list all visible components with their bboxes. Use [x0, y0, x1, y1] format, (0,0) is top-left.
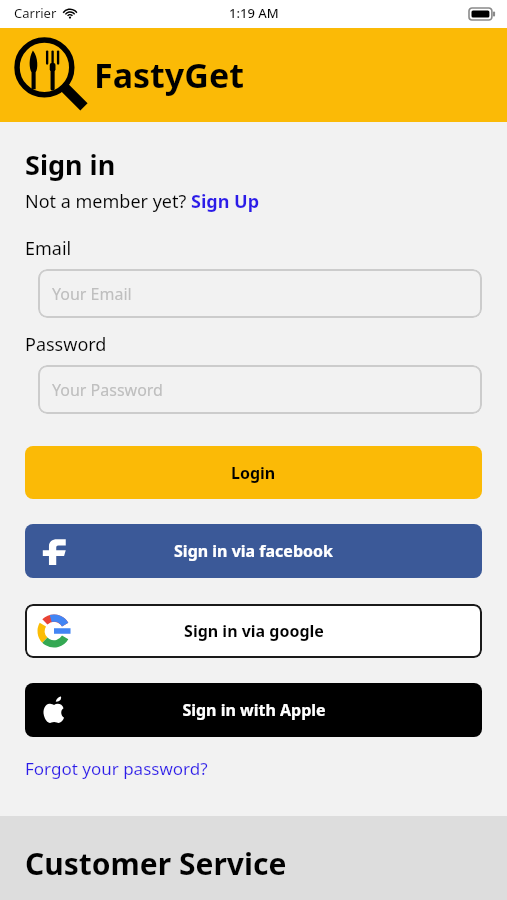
staticText: Email [25, 236, 72, 261]
button[interactable]: Sign Up [191, 189, 260, 214]
staticText: Carrier [14, 4, 57, 22]
button[interactable]: Forgot your password? [25, 757, 208, 780]
staticText: Sign in via google [184, 620, 324, 642]
staticText: Sign Up [191, 189, 260, 214]
staticText: Sign in [25, 146, 116, 183]
button[interactable]: Sign in with Apple [25, 683, 482, 737]
staticText: Not a member yet? [25, 189, 191, 214]
staticText: 1:19 AM [229, 4, 279, 22]
staticText: Login [231, 462, 276, 484]
staticText: Forgot your password? [25, 757, 208, 780]
staticText: Customer Service [25, 843, 287, 884]
button[interactable]: Your Password [38, 365, 482, 414]
button[interactable]: Sign in via google [25, 604, 482, 658]
button[interactable]: Sign in via facebook [25, 524, 482, 578]
button[interactable]: Your Email [38, 269, 482, 318]
staticText: Sign in with Apple [182, 699, 326, 721]
staticText: Password [25, 332, 107, 357]
staticText: FastyGet [94, 52, 244, 98]
staticText: Your Email [52, 283, 132, 305]
staticText: Your Password [52, 379, 163, 401]
staticText: Sign in via facebook [174, 540, 333, 562]
button[interactable]: Login [25, 446, 482, 499]
